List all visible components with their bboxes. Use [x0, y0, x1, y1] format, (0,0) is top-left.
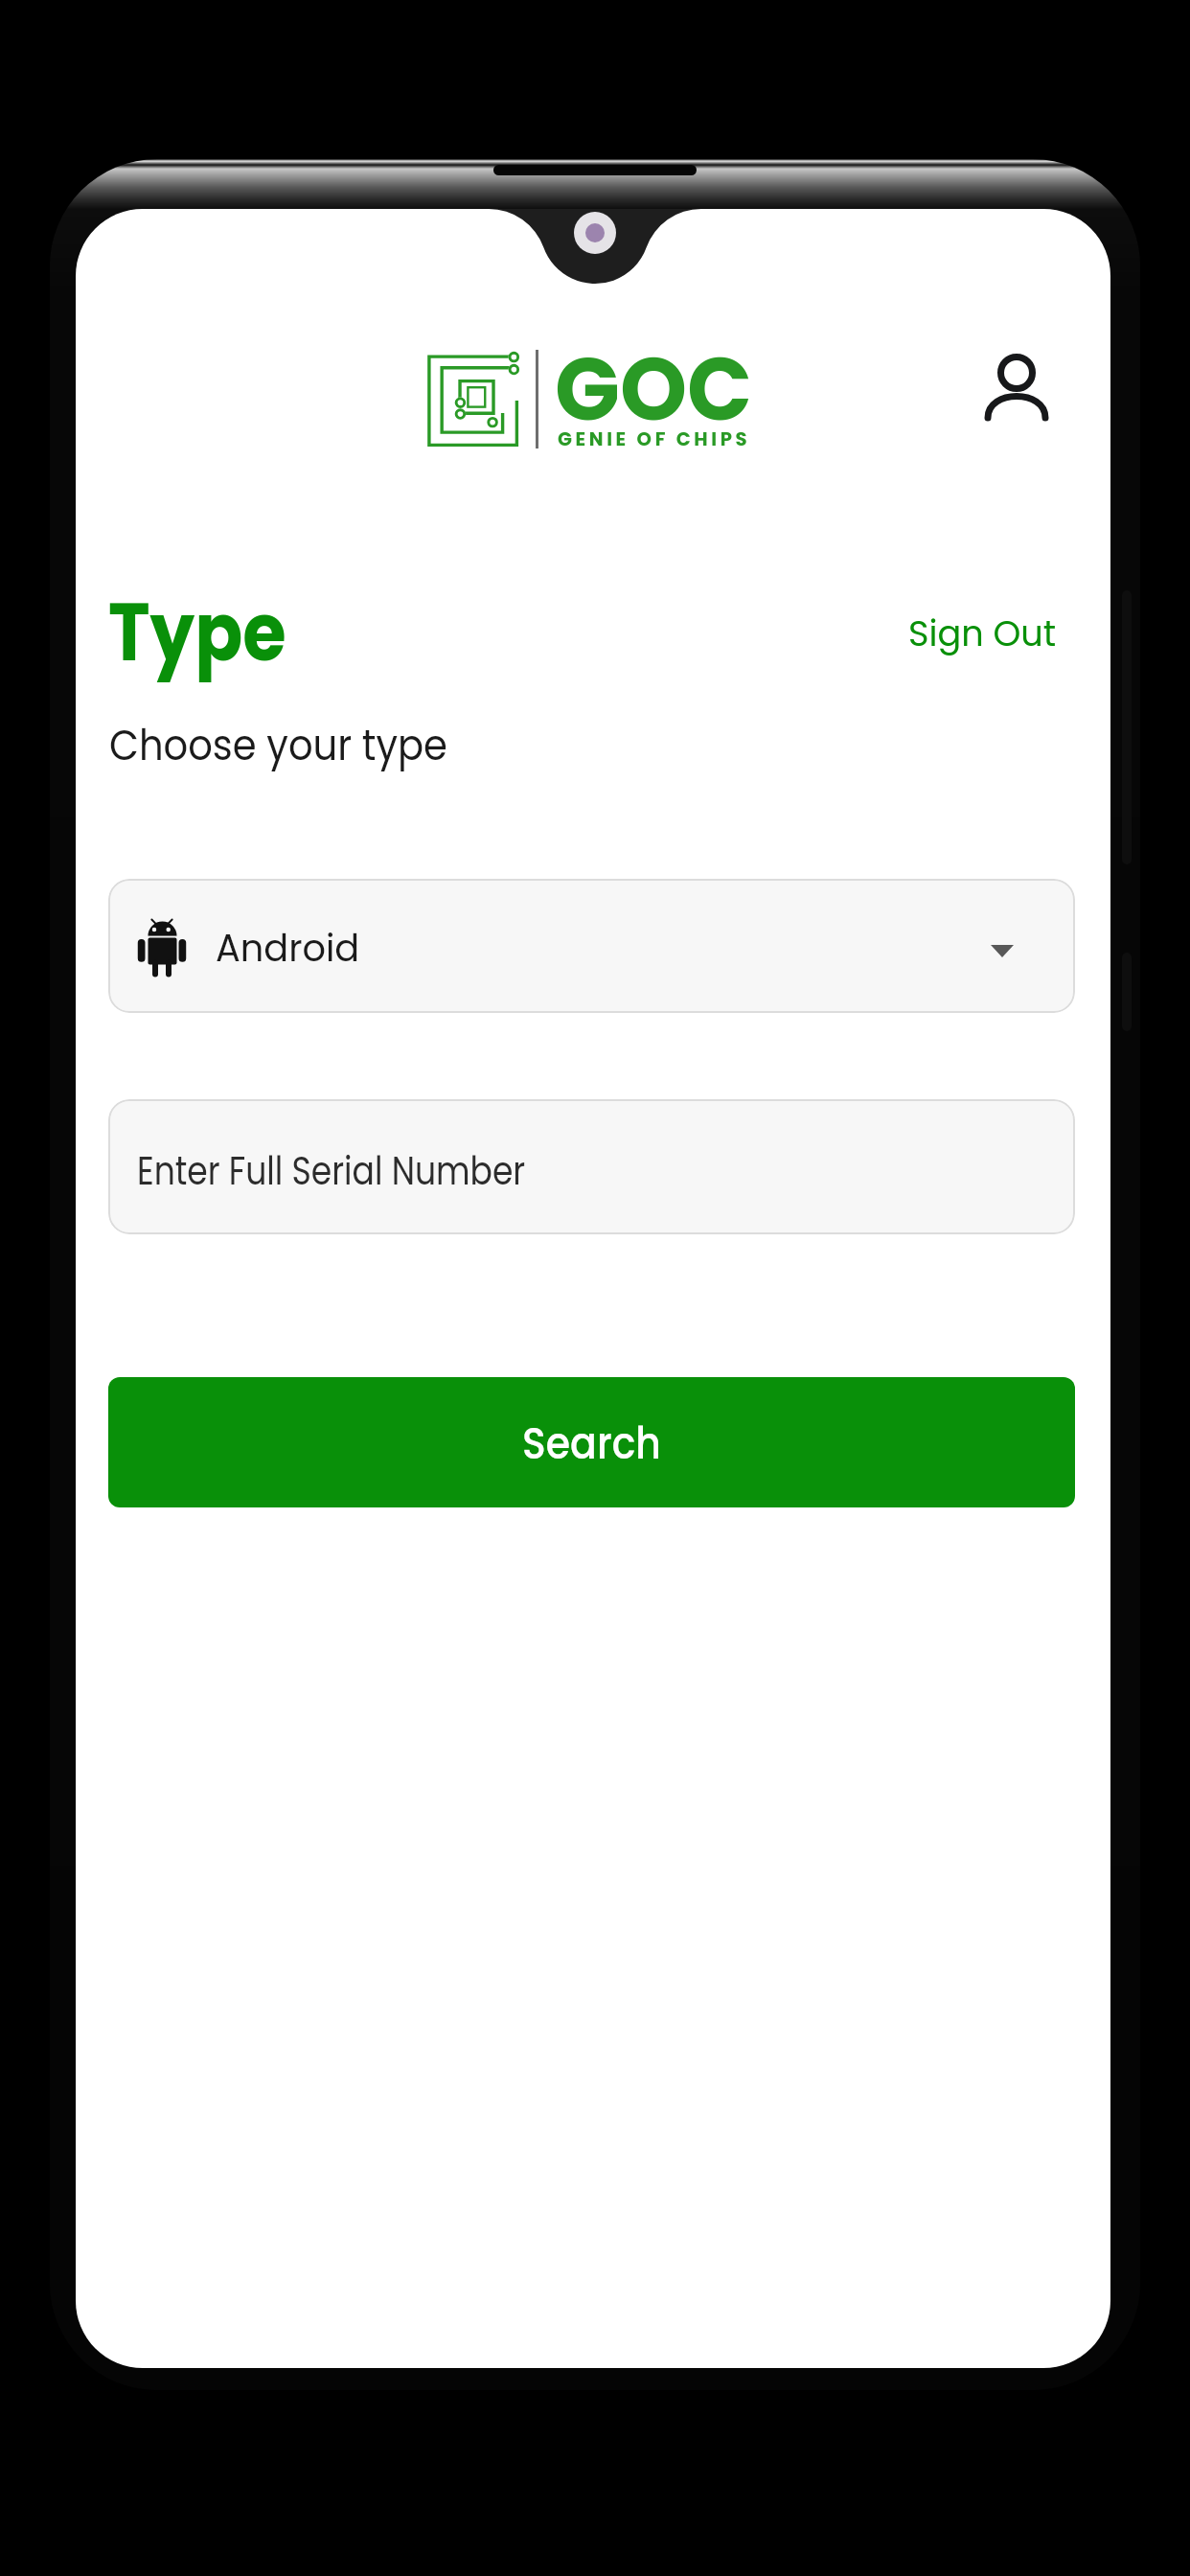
button[interactable]: Enter Full Serial Number: [108, 1099, 1075, 1234]
staticText: Search: [522, 1412, 661, 1474]
staticText: Sign Out: [908, 609, 1057, 658]
staticText: GOC: [555, 327, 752, 450]
staticText: Enter Full Serial Number: [137, 1144, 525, 1199]
button[interactable]: Search: [108, 1377, 1075, 1507]
button[interactable]: Sign Out: [887, 588, 1077, 680]
staticText: Android: [216, 921, 360, 975]
button[interactable]: Android: [108, 879, 1075, 1013]
button[interactable]: Account: [958, 331, 1075, 444]
staticText: Type: [108, 575, 286, 689]
staticText: GENIE OF CHIPS: [558, 426, 751, 452]
staticText: Choose your type: [109, 716, 448, 774]
